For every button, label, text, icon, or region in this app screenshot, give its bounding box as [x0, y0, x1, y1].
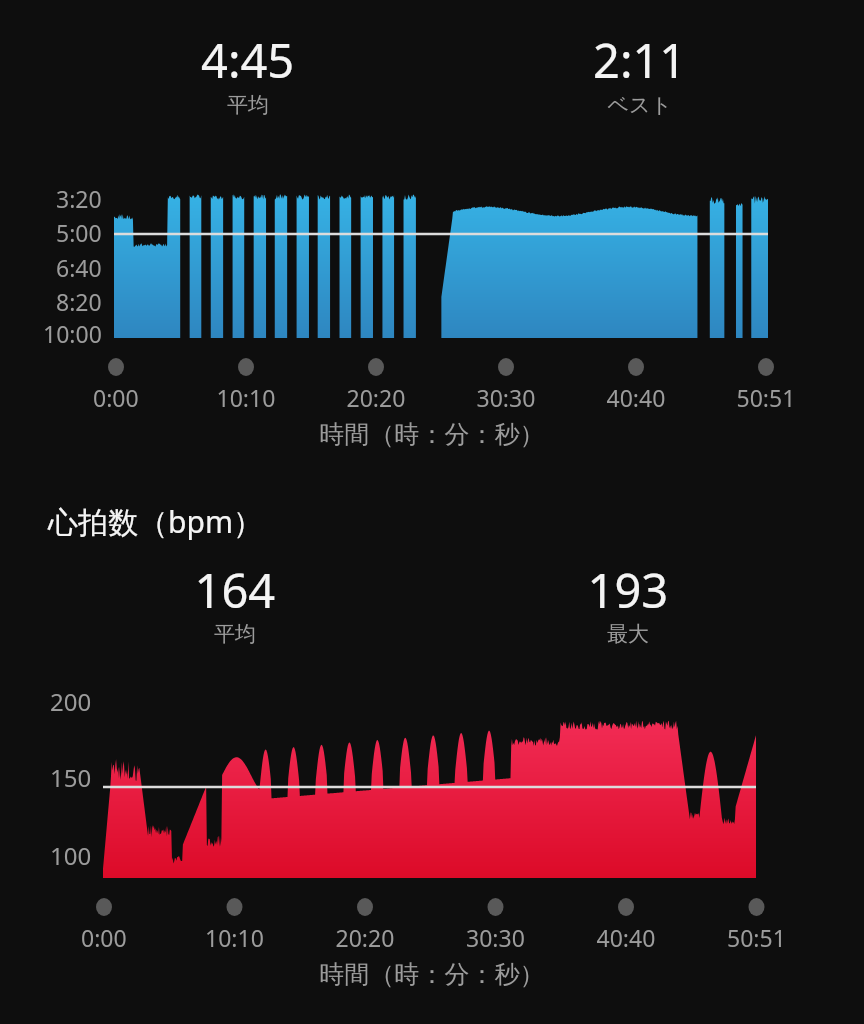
button[interactable]: Workout summary: pace and heart rate cha…: [0, 0, 864, 1024]
